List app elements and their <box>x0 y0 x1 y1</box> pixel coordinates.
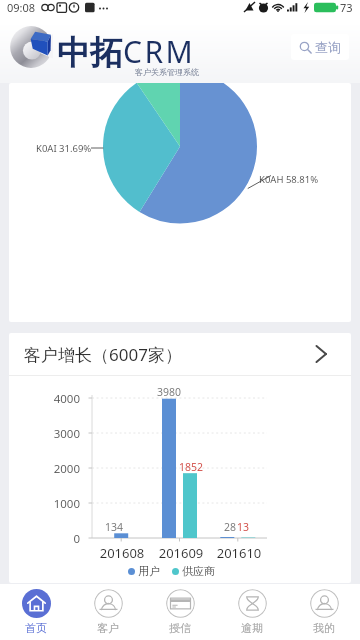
staticText: 73 <box>340 0 353 15</box>
staticText: 查询 <box>315 39 341 55</box>
staticText: 1000 <box>35 496 80 512</box>
staticText: 供应商 <box>182 564 215 578</box>
staticText: 3000 <box>35 426 80 442</box>
button[interactable]: 客户增长（6007家） <box>9 333 351 375</box>
button[interactable]: 客户 <box>72 584 144 640</box>
staticText: 客户关系管理系统 <box>135 67 199 77</box>
button[interactable]: 首页 <box>0 584 72 640</box>
button[interactable]: 逾期 <box>216 584 288 640</box>
staticText: CRM <box>123 31 196 72</box>
staticText: K0AI 31.69% <box>36 142 92 155</box>
staticText: 2000 <box>35 461 80 477</box>
button[interactable]: 授信 <box>144 584 216 640</box>
staticText: 首页 <box>25 621 47 635</box>
staticText: 13 <box>223 520 263 534</box>
staticText: 中拓 <box>57 32 123 74</box>
staticText: 201610 <box>199 544 279 562</box>
staticText: 用户 <box>138 564 160 578</box>
staticText: 授信 <box>169 621 191 635</box>
staticText: K0AH 58.81% <box>259 173 319 186</box>
staticText: 134 <box>94 520 134 534</box>
staticText: 4000 <box>35 391 80 407</box>
staticText: 09:08 <box>7 0 36 15</box>
staticText: 客户增长（6007家） <box>24 343 182 366</box>
staticText: 0 <box>35 531 80 547</box>
staticText: 28 <box>210 520 250 534</box>
staticText: 客户 <box>97 621 119 635</box>
staticText: 3980 <box>149 385 189 399</box>
staticText: 1852 <box>171 460 211 474</box>
button[interactable]: 查询 <box>291 34 349 60</box>
staticText: 201608 <box>82 544 162 562</box>
staticText: 我的 <box>313 621 335 635</box>
button[interactable]: 我的 <box>288 584 360 640</box>
staticText: 201609 <box>141 544 221 562</box>
staticText: 逾期 <box>241 621 263 635</box>
